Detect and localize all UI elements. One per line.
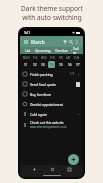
staticText: March [31,39,45,45]
button[interactable]: Upcoming [33,49,53,53]
button[interactable]: Open menu [23,39,29,45]
staticText: 16 [68,63,72,67]
staticText: 15 [59,63,63,67]
staticText: MON [23,56,30,60]
button[interactable]: 17 [74,61,81,68]
staticText: Dentist appointment [30,102,80,107]
button[interactable]: 11 [22,61,29,68]
button[interactable]: Filter [62,39,68,45]
staticText: TUE [33,56,38,60]
button[interactable]: 16 [66,61,73,68]
staticText: Dark theme support with auto switching [14,4,90,22]
button[interactable]: Search [68,39,74,45]
button[interactable]: More options [74,39,80,45]
button[interactable]: March [31,39,45,45]
button[interactable]: Expand tabs [70,49,73,52]
staticText: 12 [33,63,37,67]
button[interactable]: Home [49,166,55,172]
button[interactable]: Today [73,47,80,54]
button[interactable]: 14 [48,61,55,68]
button[interactable]: Dentist appointment [20,99,83,109]
staticText: List [25,49,31,53]
staticText: 1/3 [70,72,75,76]
staticText: SUN [74,56,80,60]
staticText: FRI [59,56,63,60]
staticText: Overdue [55,49,68,53]
staticText: THU [50,56,56,60]
staticText: www.interestingwebsite.co.uk [30,125,67,129]
button[interactable]: Add task [68,154,79,165]
staticText: 17 [76,63,80,67]
button[interactable]: 13 [39,61,46,68]
staticText: WED [41,56,47,60]
button[interactable]: Send final quote [20,79,83,89]
staticText: Today [73,47,80,54]
staticText: 13 [41,63,45,67]
staticText: 9:41 [24,31,30,35]
staticText: Finish packing [30,72,70,77]
button[interactable]: Overdue [53,49,70,53]
button[interactable]: Check out this website [20,119,83,131]
button[interactable]: List [23,49,33,53]
button[interactable]: Recent apps [66,166,72,172]
button[interactable]: 12 [31,61,38,68]
staticText: 11 [24,63,28,67]
button[interactable]: Cold again [20,109,83,119]
staticText: Cold again [30,112,77,117]
button[interactable]: Finish packing [20,69,83,79]
button[interactable]: Back [31,166,37,172]
staticText: Buy furniture [30,92,80,97]
staticText: Send final quote [30,82,76,87]
button[interactable]: 15 [57,61,64,68]
staticText: SAT [66,56,71,60]
button[interactable]: Buy furniture [20,89,83,99]
staticText: 14 [50,63,54,67]
staticText: Check out this website [30,121,64,125]
staticText: Upcoming [35,49,51,53]
